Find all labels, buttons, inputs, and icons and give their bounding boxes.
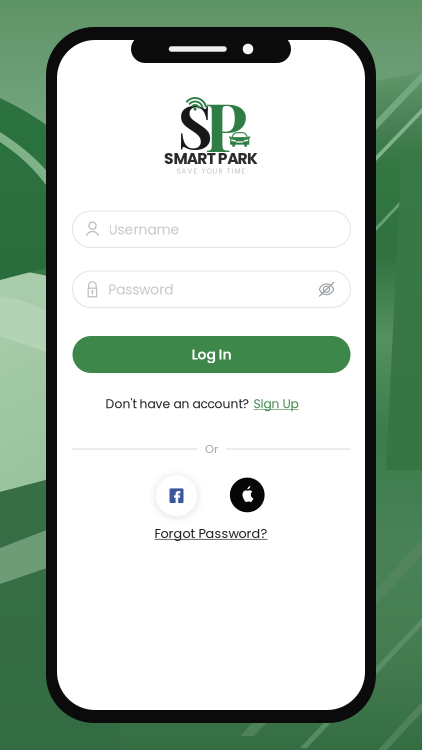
staticText: Password (108, 280, 173, 299)
staticText: Sign Up (253, 395, 298, 413)
staticText: SMART PARK (164, 148, 258, 169)
staticText: Or (205, 441, 218, 457)
staticText: SAVE YOUR TIME (176, 166, 245, 176)
button[interactable]: Sign Up (253, 395, 298, 413)
staticText: P (204, 80, 247, 168)
staticText: Username (108, 220, 179, 239)
staticText: S (177, 84, 212, 164)
button[interactable]: Log In (72, 336, 350, 373)
staticText: Forgot Password? (154, 524, 267, 542)
staticText: Don't have an account? (105, 395, 248, 413)
button[interactable]: Continue with Apple (230, 478, 265, 512)
button[interactable]: Show password (318, 281, 334, 297)
button[interactable]: Forgot Password? (154, 524, 267, 542)
staticText: Log In (191, 345, 231, 364)
button[interactable]: Continue with Facebook (156, 475, 197, 516)
